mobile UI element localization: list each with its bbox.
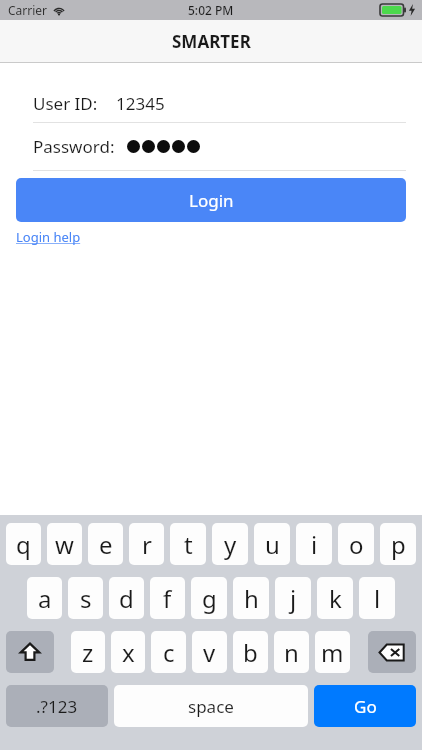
staticText: y: [224, 528, 237, 561]
staticText: e: [99, 528, 113, 561]
staticText: z: [82, 636, 94, 669]
staticText: j: [290, 582, 297, 615]
staticText: Password:: [33, 135, 115, 158]
button[interactable]: Backspace: [368, 631, 416, 673]
staticText: x: [122, 636, 135, 669]
staticText: Go: [354, 695, 377, 718]
button[interactable]: d: [109, 577, 144, 619]
button[interactable]: o: [338, 523, 374, 565]
button[interactable]: Login help: [16, 228, 81, 246]
staticText: t: [184, 528, 193, 561]
staticText: a: [38, 582, 52, 615]
button[interactable]: Go: [314, 685, 416, 727]
button[interactable]: n: [274, 631, 309, 673]
button[interactable]: w: [47, 523, 82, 565]
staticText: Login: [189, 189, 234, 212]
staticText: g: [202, 582, 217, 615]
button[interactable]: Shift: [6, 631, 54, 673]
button[interactable]: u: [254, 523, 290, 565]
button[interactable]: j: [275, 577, 311, 619]
button[interactable]: q: [6, 523, 41, 565]
staticText: h: [244, 582, 259, 615]
button[interactable]: v: [192, 631, 227, 673]
button[interactable]: a: [27, 577, 62, 619]
button[interactable]: z: [71, 631, 105, 673]
button[interactable]: Password:: [33, 123, 406, 170]
staticText: b: [243, 636, 258, 669]
button[interactable]: s: [68, 577, 103, 619]
staticText: v: [203, 636, 216, 669]
staticText: i: [311, 528, 318, 561]
staticText: 12345: [116, 92, 165, 115]
staticText: User ID:: [33, 92, 98, 115]
staticText: Carrier: [8, 2, 48, 18]
button[interactable]: x: [111, 631, 145, 673]
button[interactable]: y: [212, 523, 248, 565]
button[interactable]: r: [129, 523, 164, 565]
button[interactable]: Login: [16, 178, 406, 222]
staticText: s: [80, 582, 92, 615]
staticText: k: [329, 582, 342, 615]
staticText: q: [16, 528, 31, 561]
staticText: m: [321, 636, 344, 669]
button[interactable]: k: [317, 577, 353, 619]
button[interactable]: g: [191, 577, 227, 619]
staticText: c: [163, 636, 175, 669]
button[interactable]: i: [296, 523, 332, 565]
staticText: f: [163, 582, 172, 615]
button[interactable]: e: [88, 523, 123, 565]
button[interactable]: p: [380, 523, 416, 565]
button[interactable]: m: [315, 631, 350, 673]
staticText: Login help: [16, 228, 81, 246]
button[interactable]: h: [233, 577, 269, 619]
staticText: r: [142, 528, 152, 561]
button[interactable]: b: [233, 631, 268, 673]
staticText: d: [119, 582, 134, 615]
staticText: .?123: [36, 695, 78, 718]
staticText: w: [55, 528, 74, 561]
staticText: space: [188, 695, 234, 718]
button[interactable]: l: [359, 577, 395, 619]
staticText: 5:02 PM: [188, 2, 234, 18]
button[interactable]: c: [151, 631, 186, 673]
staticText: SMARTER: [172, 30, 251, 53]
button[interactable]: space: [114, 685, 308, 727]
button[interactable]: t: [170, 523, 206, 565]
button[interactable]: f: [150, 577, 185, 619]
staticText: l: [374, 582, 381, 615]
staticText: u: [265, 528, 280, 561]
button[interactable]: User ID:: [33, 85, 406, 122]
staticText: n: [284, 636, 299, 669]
staticText: o: [349, 528, 364, 561]
staticText: p: [391, 528, 406, 561]
button[interactable]: .?123: [6, 685, 108, 727]
